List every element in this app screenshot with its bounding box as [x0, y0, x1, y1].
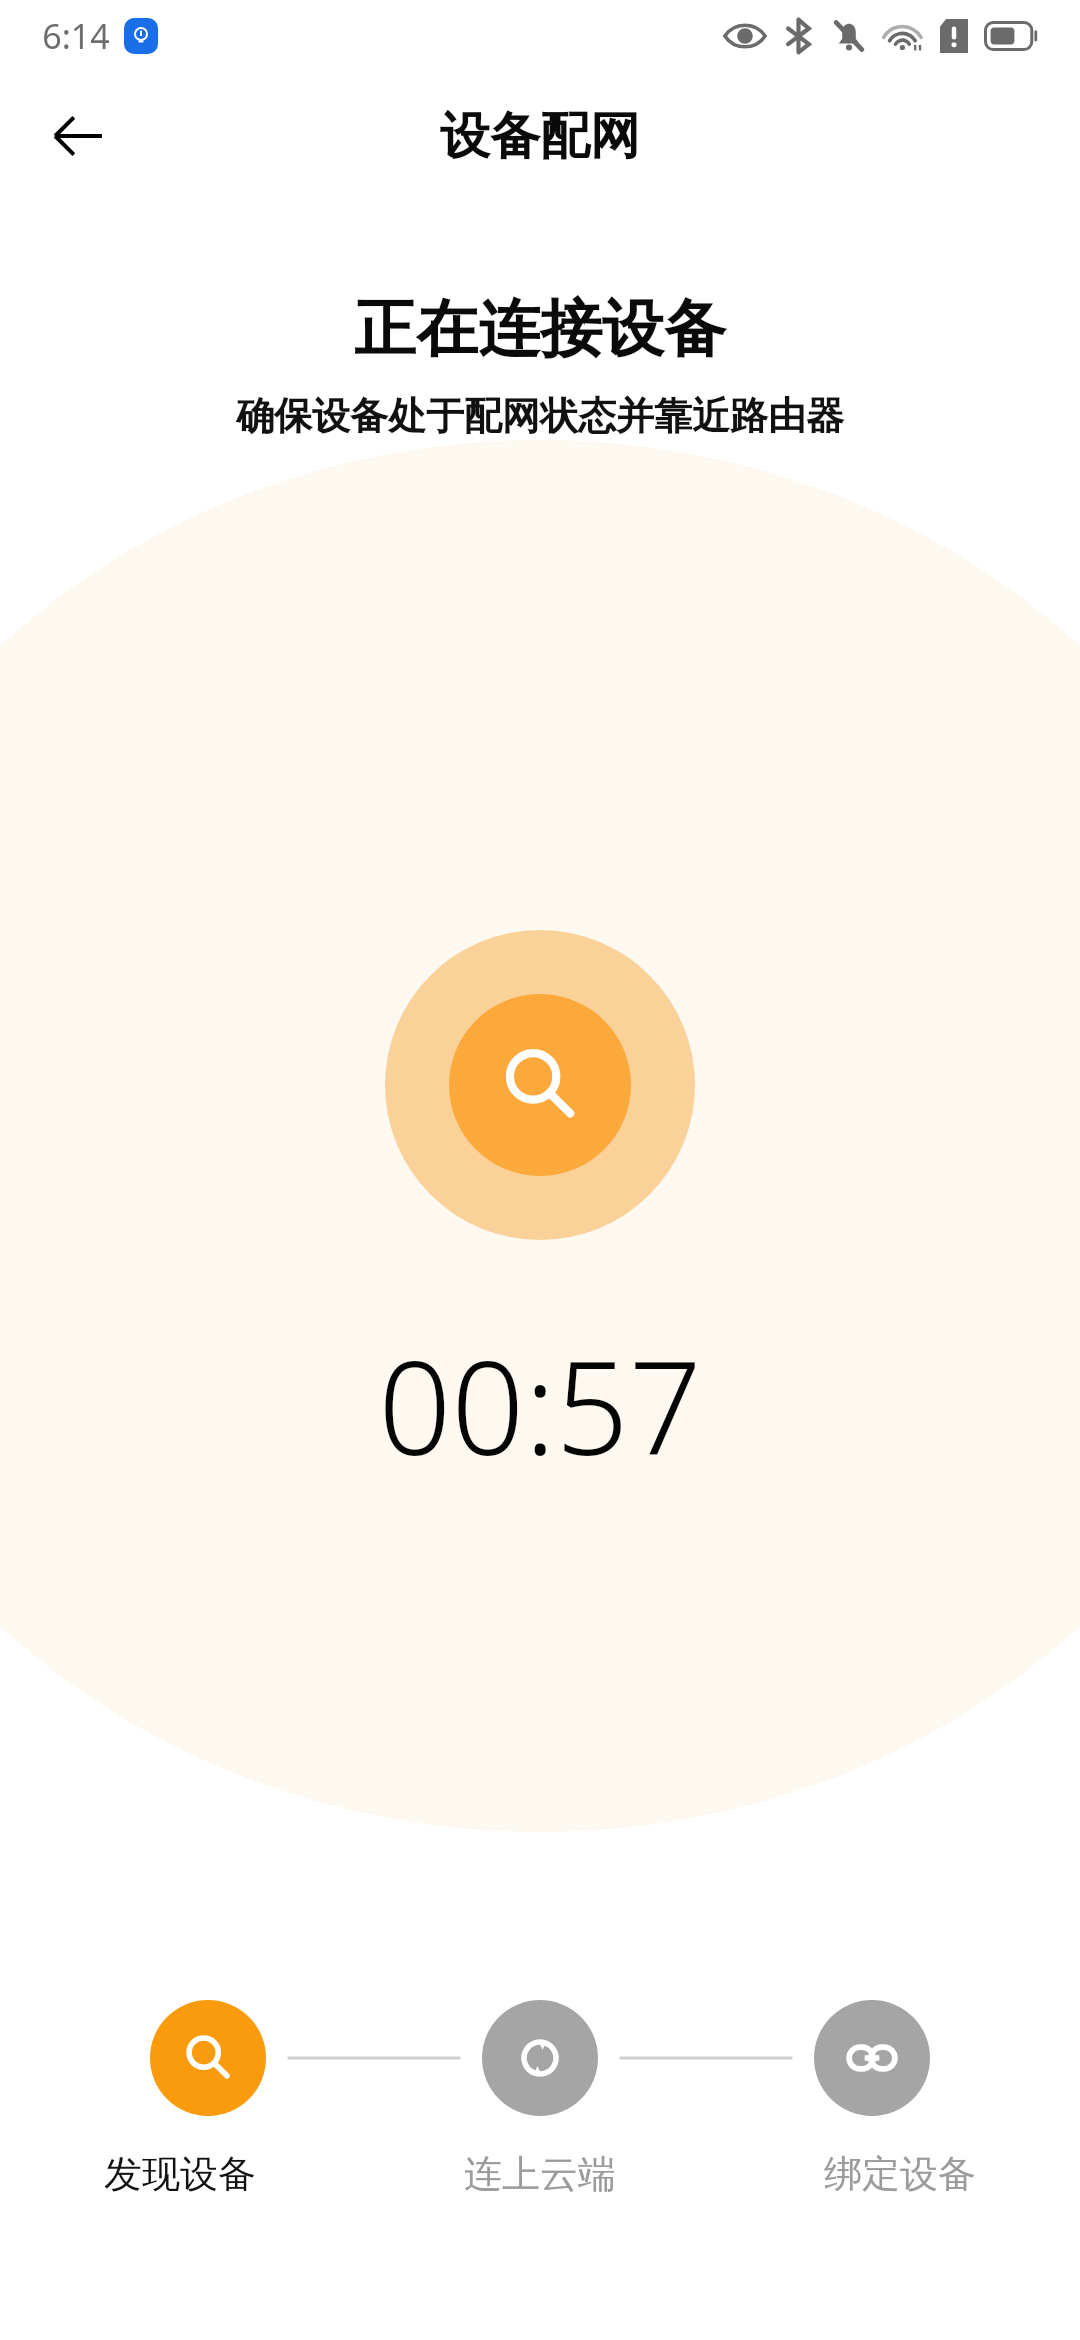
button[interactable]: Bind device: [814, 2000, 930, 2116]
staticText: 发现设备: [104, 2150, 256, 2198]
staticText: 连上云端: [464, 2150, 616, 2198]
button[interactable]: Searching for devices: [385, 930, 695, 1240]
staticText: 00:57: [378, 1318, 702, 1492]
button[interactable]: Discover device: [150, 2000, 266, 2116]
staticText: 设备配网: [440, 105, 640, 168]
staticText: 正在连接设备: [354, 290, 726, 368]
button[interactable]: Connect to cloud: [482, 2000, 598, 2116]
staticText: 确保设备处于配网状态并靠近路由器: [236, 392, 844, 440]
button[interactable]: Back: [30, 88, 126, 184]
staticText: 绑定设备: [824, 2150, 976, 2198]
staticText: 6:14: [42, 13, 110, 59]
